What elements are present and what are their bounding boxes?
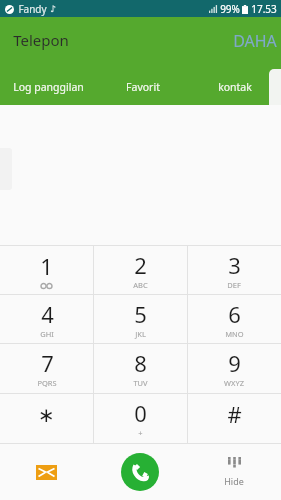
button[interactable]: 4: [0, 295, 93, 344]
button[interactable]: 8: [93, 344, 187, 394]
button[interactable]: 3: [187, 246, 281, 295]
staticText: Favorit: [126, 80, 160, 94]
staticText: 0: [134, 398, 147, 428]
staticText: GHI: [40, 329, 54, 339]
staticText: JKL: [135, 329, 146, 339]
staticText: ∗: [38, 403, 55, 426]
button[interactable]: 5: [93, 295, 187, 344]
staticText: DAHA: [233, 30, 277, 52]
button[interactable]: Favorit: [97, 69, 189, 105]
button[interactable]: 6: [187, 295, 281, 344]
staticText: TUV: [133, 378, 148, 388]
staticText: 99%: [220, 2, 240, 16]
staticText: WXYZ: [224, 378, 244, 388]
button[interactable]: kontak: [189, 69, 281, 105]
button[interactable]: 9: [187, 344, 281, 394]
staticText: 7: [41, 348, 54, 378]
staticText: 17.53: [251, 2, 277, 16]
staticText: Fandy: [18, 2, 47, 16]
staticText: kontak: [218, 80, 252, 94]
button[interactable]: Hide: [187, 444, 281, 500]
staticText: 1: [40, 251, 53, 281]
staticText: 9: [228, 348, 241, 378]
staticText: Log panggilan: [13, 80, 84, 94]
button[interactable]: 2: [93, 246, 187, 295]
staticText: ABC: [133, 280, 148, 290]
staticText: +: [138, 428, 143, 438]
button[interactable]: 0: [93, 394, 187, 444]
staticText: PQRS: [37, 378, 57, 388]
button[interactable]: Send message: [0, 444, 93, 500]
staticText: 6: [228, 299, 241, 329]
staticText: Telepon: [13, 30, 69, 50]
staticText: 8: [134, 348, 147, 378]
button[interactable]: ∗: [0, 394, 93, 444]
button[interactable]: DAHA: [229, 28, 281, 54]
button[interactable]: #: [187, 394, 281, 444]
staticText: #: [227, 399, 242, 429]
staticText: DEF: [227, 280, 241, 290]
button[interactable]: 7: [0, 344, 93, 394]
button[interactable]: Log panggilan: [0, 69, 97, 105]
staticText: ♪: [50, 4, 56, 14]
staticText: Hide: [224, 475, 244, 487]
button[interactable]: Call: [93, 444, 187, 500]
staticText: 2: [134, 250, 147, 280]
button[interactable]: 1: [0, 246, 93, 295]
staticText: 5: [134, 299, 147, 329]
staticText: 4: [41, 299, 54, 329]
staticText: MNO: [225, 329, 244, 339]
staticText: 3: [228, 250, 241, 280]
